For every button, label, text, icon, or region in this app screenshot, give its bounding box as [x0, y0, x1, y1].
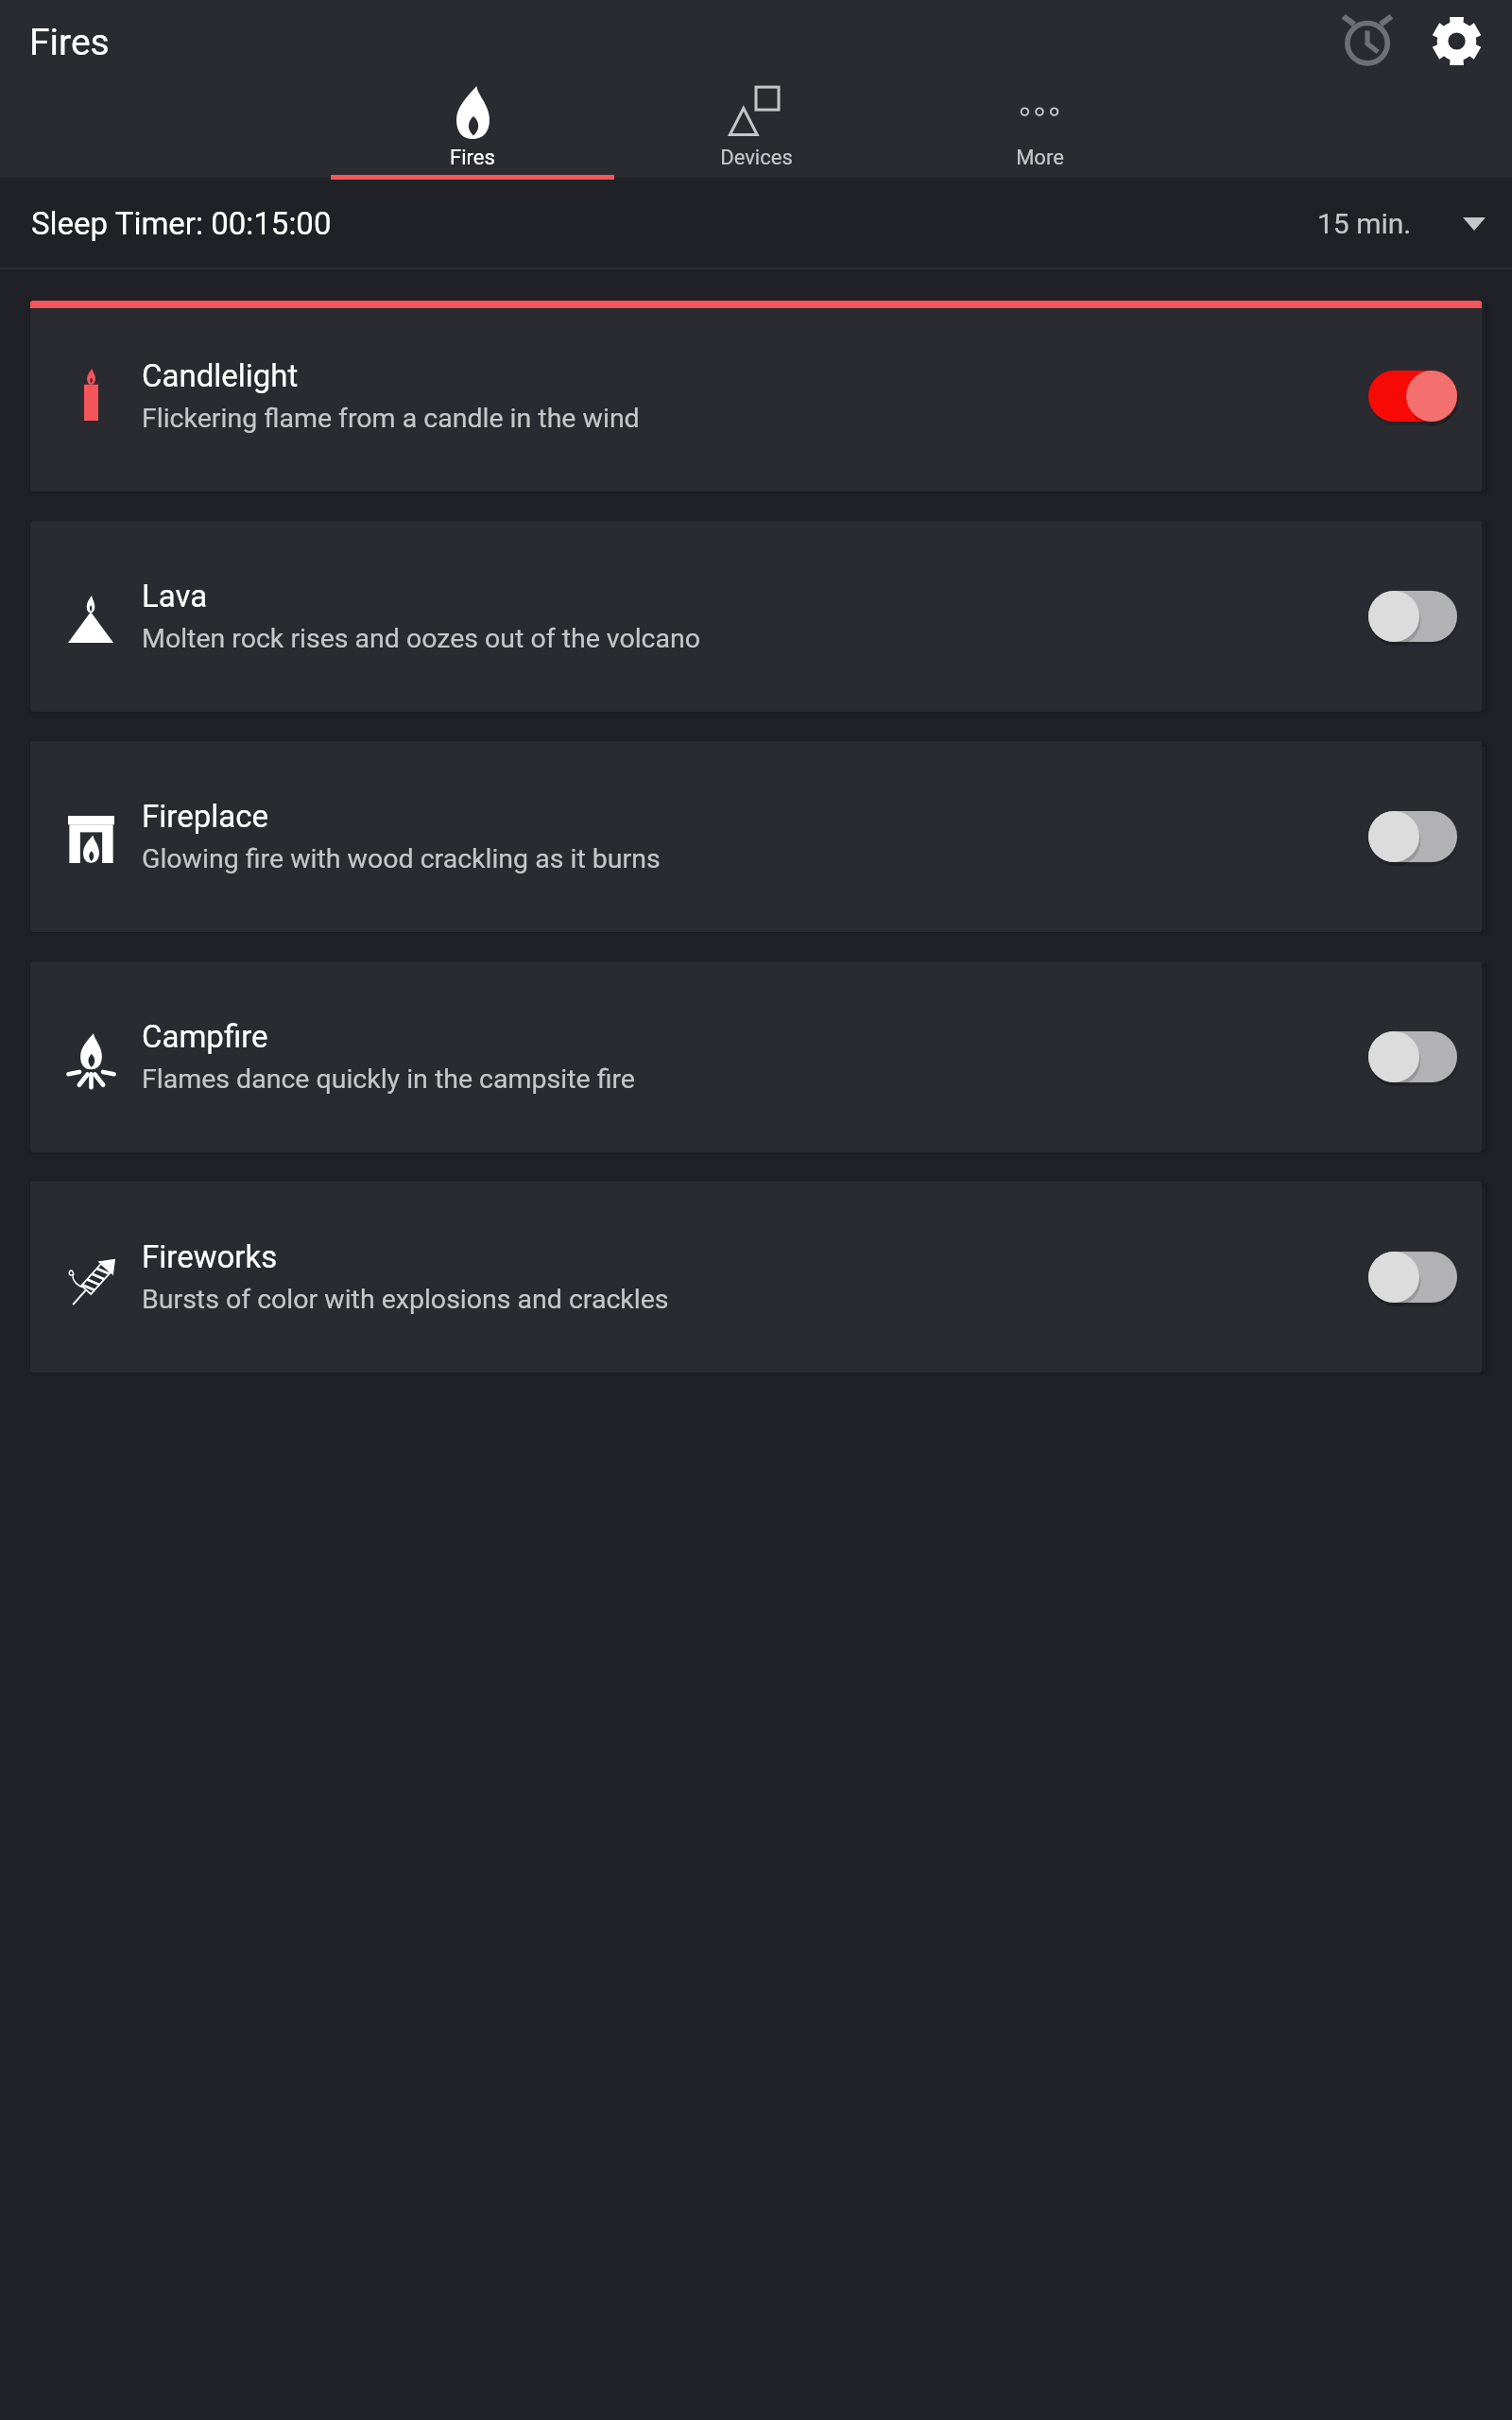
staticText: Sleep Timer: 00:15:00	[31, 205, 332, 242]
staticText: More	[1016, 146, 1064, 170]
button[interactable]: Devices	[614, 83, 898, 178]
staticText: Fires	[29, 21, 110, 64]
staticText: Lava	[142, 578, 208, 614]
button[interactable]: Turn on	[1357, 785, 1469, 889]
staticText: Fireworks	[142, 1238, 278, 1275]
button[interactable]: Fireplace	[30, 741, 1482, 932]
button[interactable]: Sleep Timer: 00:15:00	[0, 178, 1512, 269]
button[interactable]: Fires	[331, 83, 614, 178]
button[interactable]: Settings	[1421, 0, 1499, 83]
staticText: 15 min.	[1317, 207, 1412, 240]
button[interactable]: Fireworks	[30, 1182, 1482, 1373]
button[interactable]: Turn off	[1357, 344, 1469, 448]
staticText: Fireplace	[142, 798, 268, 835]
staticText: Flickering flame from a candle in the wi…	[142, 403, 640, 434]
staticText: Bursts of color with explosions and crac…	[142, 1284, 669, 1315]
button[interactable]: Turn on	[1357, 1005, 1469, 1109]
staticText: Candlelight	[142, 357, 299, 394]
button[interactable]: Turn on	[1357, 564, 1469, 668]
button[interactable]: Sleep timer	[1331, 0, 1421, 83]
button[interactable]: Campfire	[30, 961, 1482, 1152]
button[interactable]: Candlelight	[30, 301, 1482, 492]
staticText: Flames dance quickly in the campsite fir…	[142, 1063, 635, 1095]
button[interactable]: Turn on	[1357, 1225, 1469, 1329]
staticText: Molten rock rises and oozes out of the v…	[142, 623, 701, 654]
staticText: Fires	[450, 146, 495, 170]
button[interactable]: Lava	[30, 521, 1482, 712]
button[interactable]: More	[898, 83, 1181, 178]
staticText: Devices	[720, 146, 793, 170]
staticText: Campfire	[142, 1018, 268, 1055]
staticText: Glowing fire with wood crackling as it b…	[142, 843, 661, 874]
